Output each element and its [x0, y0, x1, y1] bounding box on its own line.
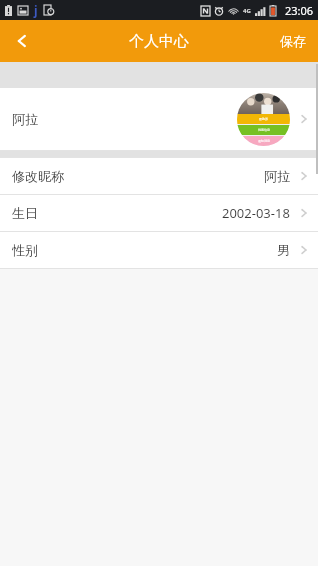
staticText: 阿拉: [12, 111, 38, 127]
button[interactable]: 修改昵称: [0, 158, 318, 194]
staticText: 性别: [12, 242, 38, 258]
staticText: 个人中心: [129, 32, 189, 51]
staticText: 阿拉: [264, 168, 290, 184]
staticText: 保存: [280, 33, 306, 49]
staticText: 生日: [12, 205, 38, 221]
staticText: 4G: [243, 7, 251, 15]
staticText: 优惠信息: [258, 128, 270, 132]
staticText: 团购券: [259, 117, 268, 121]
button[interactable]: 保存: [268, 20, 318, 62]
button[interactable]: 生日: [0, 195, 318, 231]
staticText: 通知消息: [258, 139, 270, 143]
button[interactable]: 性别: [0, 232, 318, 268]
button[interactable]: Back: [0, 20, 44, 62]
staticText: j: [34, 2, 38, 18]
staticText: 2002-03-18: [222, 204, 290, 222]
staticText: 修改昵称: [12, 168, 64, 184]
staticText: 男: [277, 242, 290, 258]
button[interactable]: 阿拉: [0, 88, 318, 150]
staticText: 23:06: [285, 3, 314, 18]
